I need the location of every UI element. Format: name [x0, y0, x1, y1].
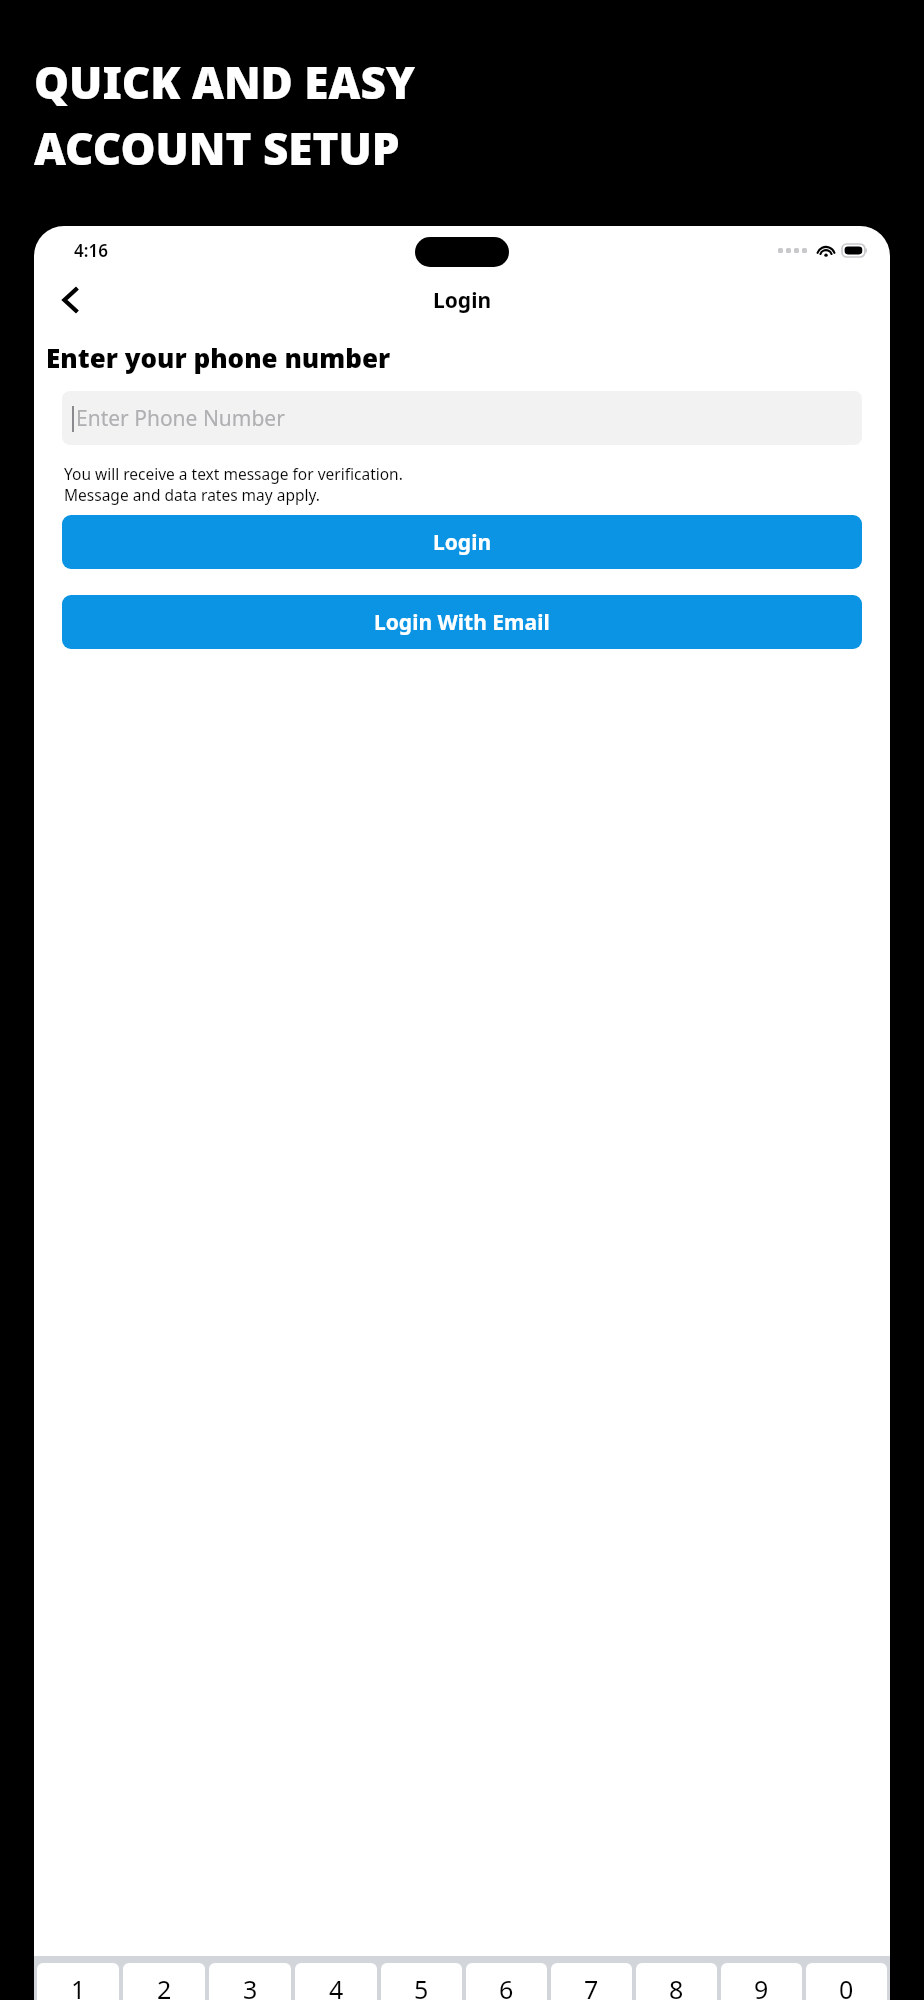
staticText: Enter Phone Number — [76, 404, 285, 433]
staticText: Message and data rates may apply. — [64, 484, 320, 505]
button[interactable]: Back — [48, 278, 92, 322]
staticText: 4:16 — [74, 239, 108, 262]
staticText: 2 — [157, 1972, 172, 2000]
staticText: Login — [433, 528, 492, 557]
button[interactable]: 7 — [551, 1963, 632, 2000]
staticText: 5 — [414, 1972, 429, 2000]
staticText: 9 — [754, 1972, 769, 2000]
staticText: ACCOUNT SETUP — [34, 118, 400, 178]
staticText: QUICK AND EASY — [34, 52, 416, 112]
staticText: Login With Email — [374, 608, 550, 637]
button[interactable]: 4 — [295, 1963, 377, 2000]
staticText: 7 — [584, 1972, 599, 2000]
button[interactable]: 5 — [381, 1963, 462, 2000]
button[interactable]: 6 — [466, 1963, 547, 2000]
button[interactable]: Login With Email — [62, 595, 862, 649]
button[interactable]: 8 — [636, 1963, 717, 2000]
button[interactable]: 9 — [721, 1963, 802, 2000]
staticText: Enter your phone number — [46, 340, 391, 375]
button[interactable]: 0 — [806, 1963, 887, 2000]
staticText: 4 — [329, 1972, 344, 2000]
button[interactable]: 3 — [209, 1963, 291, 2000]
button[interactable]: Enter Phone Number — [62, 391, 862, 445]
staticText: Login — [433, 286, 492, 315]
staticText: You will receive a text message for veri… — [64, 463, 403, 484]
staticText: 6 — [499, 1972, 514, 2000]
staticText: 0 — [839, 1972, 854, 2000]
button[interactable]: 2 — [123, 1963, 205, 2000]
button[interactable]: 1 — [37, 1963, 119, 2000]
button[interactable]: Login — [62, 515, 862, 569]
staticText: 1 — [71, 1972, 86, 2000]
staticText: 8 — [669, 1972, 684, 2000]
staticText: 3 — [243, 1972, 258, 2000]
